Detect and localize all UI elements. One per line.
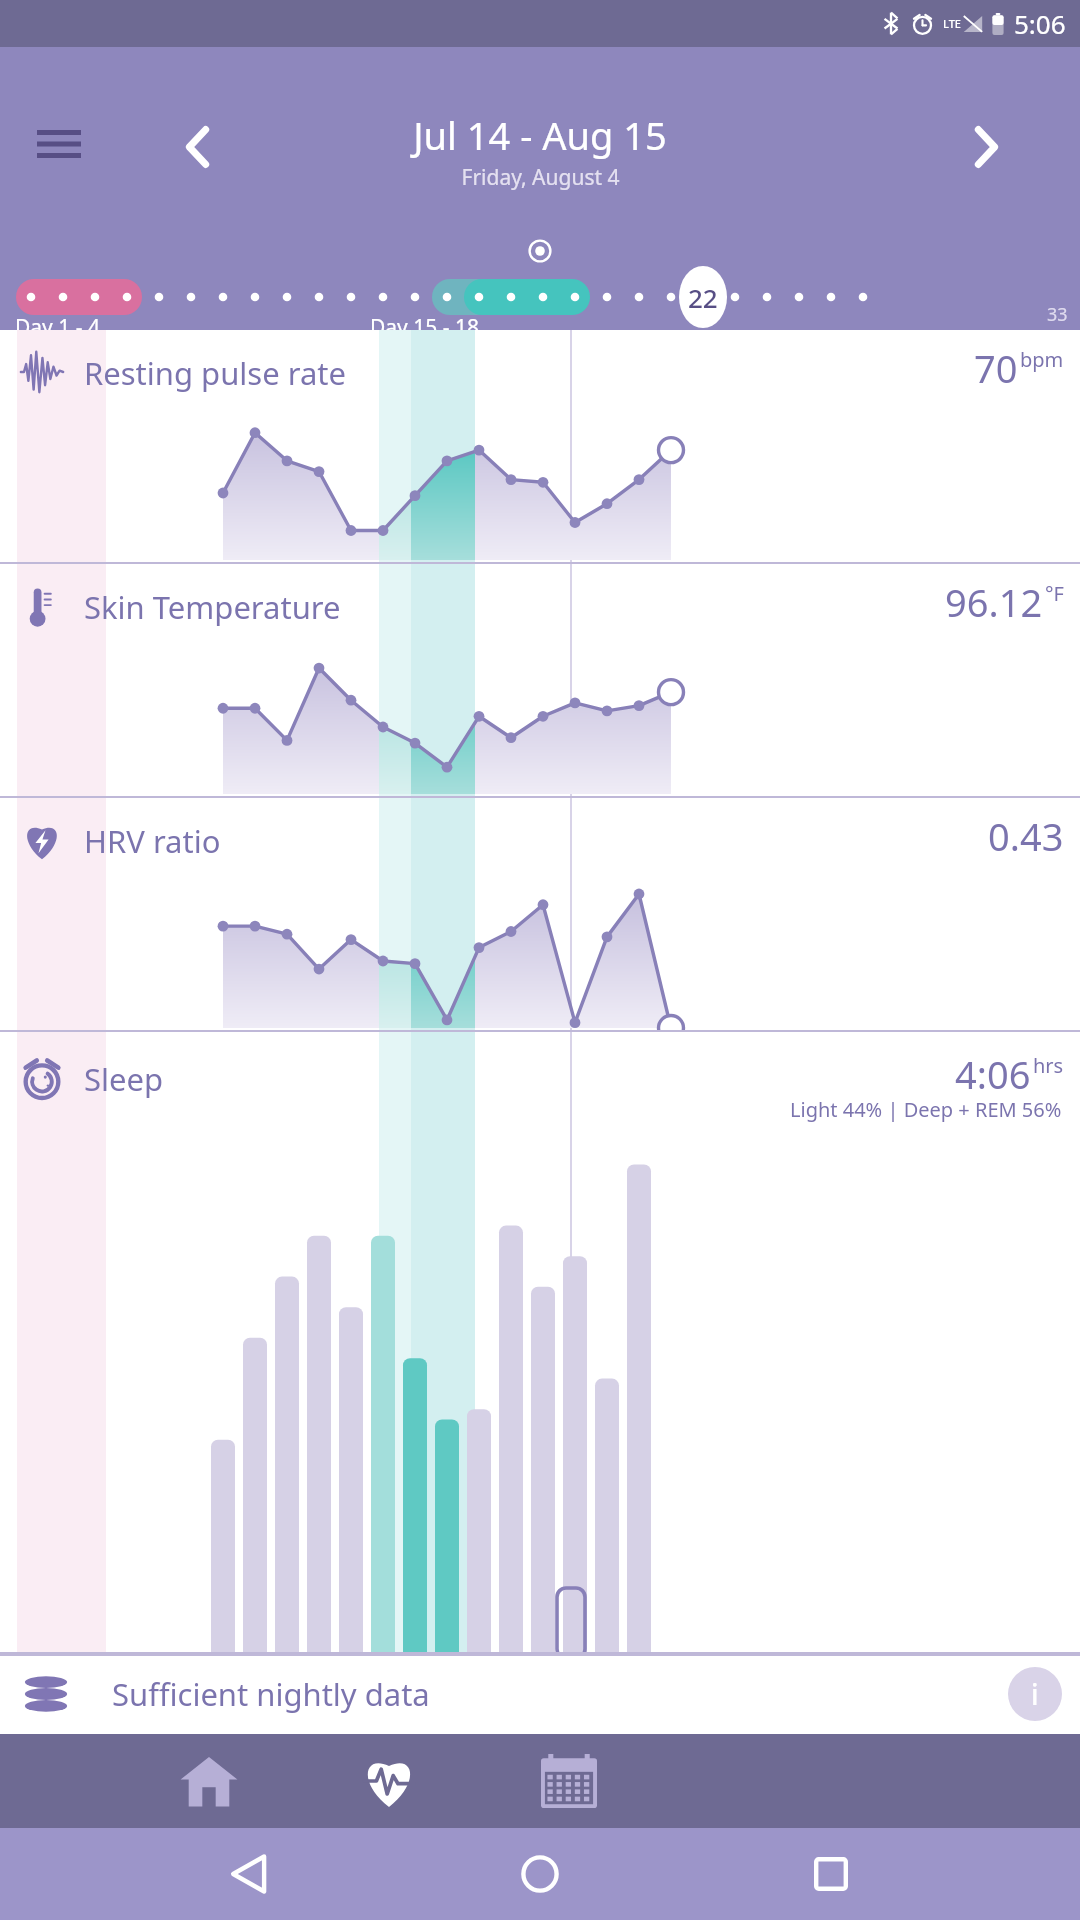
staticText: HRV ratio [84, 820, 221, 862]
button[interactable]: Home [498, 1832, 582, 1916]
staticText: LTE [943, 16, 961, 31]
staticText: 96.12 [945, 576, 1043, 628]
staticText: 70 [974, 342, 1018, 394]
button[interactable]: Next period [950, 117, 1022, 177]
staticText: Sleep [84, 1058, 164, 1100]
button[interactable]: Sufficient nightly data [0, 1654, 1080, 1734]
staticText: Day 1 - 4 [15, 313, 100, 342]
staticText: Resting pulse rate [84, 352, 346, 394]
staticText: 4:06 [955, 1048, 1031, 1100]
staticText: Friday, August 4 [461, 163, 620, 192]
staticText: Day 15 - 18 [370, 313, 480, 342]
staticText: Sufficient nightly data [112, 1673, 430, 1715]
button[interactable]: Sleep [0, 1032, 1080, 1654]
button[interactable]: Previous period [162, 117, 234, 177]
button[interactable]: Jump to today [518, 229, 562, 273]
staticText: 0.43 [988, 810, 1064, 862]
staticText: 5:06 [1014, 6, 1066, 41]
staticText: i [1031, 1675, 1039, 1713]
staticText: Light 44% | Deep + REM 56% [790, 1096, 1062, 1123]
button[interactable]: Menu [22, 119, 96, 169]
staticText: Skin Temperature [84, 586, 341, 628]
button[interactable]: Home [155, 1734, 263, 1828]
button[interactable]: Back [207, 1832, 291, 1916]
staticText: 33 [1047, 302, 1068, 327]
staticText: 22 [688, 280, 718, 315]
button[interactable]: Health trends [335, 1734, 443, 1828]
staticText: hrs [1033, 1052, 1064, 1079]
button[interactable]: Calendar [515, 1734, 623, 1828]
button[interactable]: HRV ratio [0, 798, 1080, 1032]
staticText: bpm [1020, 346, 1064, 373]
staticText: Jul 14 - Aug 15 [413, 109, 667, 161]
button[interactable]: Recent apps [789, 1832, 873, 1916]
button[interactable]: 22 [679, 275, 727, 319]
staticText: °F [1045, 580, 1064, 607]
button[interactable]: Information [1008, 1667, 1062, 1721]
button[interactable]: Resting pulse rate [0, 330, 1080, 564]
button[interactable]: Skin Temperature [0, 564, 1080, 798]
